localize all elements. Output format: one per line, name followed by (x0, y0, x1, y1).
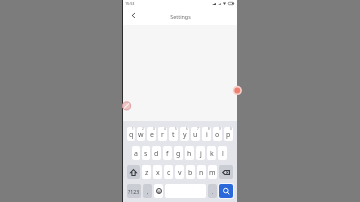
staticText: ?123 (128, 188, 140, 195)
staticText: 8 (208, 127, 210, 131)
button[interactable]: c (164, 165, 173, 179)
staticText: r (161, 130, 164, 140)
button[interactable]: Backspace (219, 165, 233, 179)
button[interactable]: Shift (127, 165, 140, 179)
staticText: z (145, 168, 149, 178)
staticText: w (138, 130, 144, 140)
button[interactable]: g (174, 146, 183, 160)
button[interactable]: 7 (191, 127, 200, 141)
staticText: Settings (170, 13, 191, 20)
button[interactable]: f (163, 146, 172, 160)
staticText: 0 (230, 127, 232, 131)
staticText: u (193, 130, 198, 140)
button[interactable]: d (152, 146, 161, 160)
button[interactable]: k (207, 146, 216, 160)
staticText: 15:53 (125, 1, 135, 6)
button[interactable]: 2 (137, 127, 145, 141)
button[interactable]: 5 (169, 127, 178, 141)
button[interactable]: j (196, 146, 205, 160)
button[interactable]: n (197, 165, 206, 179)
staticText: g (176, 149, 181, 159)
staticText: o (215, 130, 220, 140)
button[interactable]: ?123 (127, 184, 141, 198)
button[interactable]: , (143, 184, 152, 198)
staticText: 7 (197, 127, 199, 131)
staticText: f (166, 149, 169, 159)
staticText: 5 (175, 127, 177, 131)
staticText: n (199, 168, 204, 178)
staticText: 3 (153, 127, 155, 131)
button[interactable]: a (132, 146, 140, 160)
button[interactable]: b (186, 165, 195, 179)
button[interactable]: 4 (158, 127, 167, 141)
staticText: v (178, 168, 182, 178)
button[interactable]: h (185, 146, 194, 160)
button[interactable]: x (153, 165, 162, 179)
button[interactable]: 1 (127, 127, 135, 141)
staticText: x (156, 168, 160, 178)
staticText: t (172, 130, 175, 140)
staticText: h (187, 149, 192, 159)
button[interactable]: z (142, 165, 151, 179)
staticText: i (206, 130, 208, 140)
button[interactable]: Search (219, 184, 233, 198)
staticText: d (154, 149, 159, 159)
staticText: 1 (132, 127, 134, 131)
button[interactable]: v (175, 165, 184, 179)
staticText: p (226, 130, 231, 140)
staticText: 2 (142, 127, 144, 131)
staticText: y (183, 130, 187, 140)
button[interactable]: . (208, 184, 217, 198)
button[interactable]: 0 (224, 127, 233, 141)
staticText: . (212, 188, 214, 195)
staticText: m (209, 168, 216, 178)
button[interactable]: 8 (202, 127, 211, 141)
button[interactable]: s (142, 146, 150, 160)
button[interactable]: 3 (147, 127, 156, 141)
button[interactable]: Emoji (154, 184, 163, 198)
button[interactable]: Back (127, 9, 140, 22)
button[interactable]: l (218, 146, 227, 160)
staticText: b (188, 168, 193, 178)
staticText: l (222, 149, 224, 159)
staticText: c (167, 168, 171, 178)
button[interactable]: 6 (180, 127, 189, 141)
button[interactable]: 9 (213, 127, 222, 141)
staticText: k (210, 149, 214, 159)
staticText: , (147, 188, 149, 195)
staticText: 4 (164, 127, 166, 131)
staticText: j (200, 149, 202, 159)
staticText: 6 (186, 127, 188, 131)
staticText: q (129, 130, 134, 140)
staticText: a (134, 149, 138, 159)
staticText: s (144, 149, 148, 159)
button[interactable]: m (208, 165, 217, 179)
staticText: 9 (219, 127, 221, 131)
staticText: e (150, 130, 154, 140)
